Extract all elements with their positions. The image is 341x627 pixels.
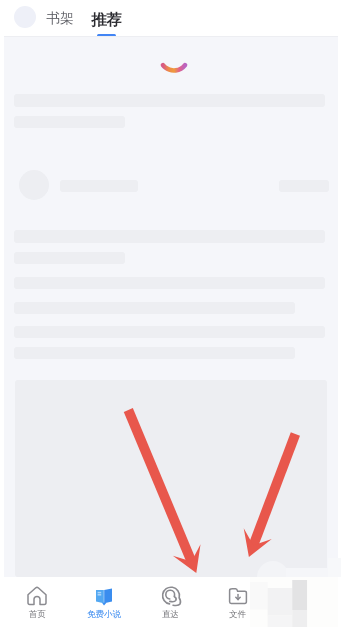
button[interactable]: 文件: [204, 577, 271, 627]
staticText: 书架: [46, 10, 74, 28]
button[interactable]: 首页: [4, 577, 70, 627]
button[interactable]: 书架: [44, 5, 76, 33]
button[interactable]: Profile: [14, 6, 36, 28]
staticText: 直达: [162, 609, 179, 620]
staticText: 文件: [229, 609, 246, 620]
staticText: 我的: [296, 609, 313, 620]
button[interactable]: 免费小说: [70, 577, 137, 627]
staticText: 免费小说: [87, 609, 121, 620]
button[interactable]: 推荐: [87, 4, 126, 37]
button[interactable]: 直达: [137, 577, 204, 627]
staticText: 推荐: [91, 10, 122, 30]
staticText: 首页: [29, 609, 46, 620]
button[interactable]: 我的: [271, 577, 338, 627]
